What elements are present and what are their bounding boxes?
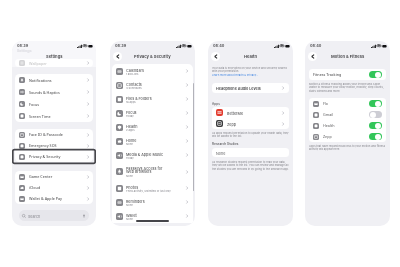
staticText: Files & Folders [126,96,152,100]
staticText: Flo [323,101,329,106]
staticText: 2 apps [126,128,135,131]
button[interactable]: iCloud [15,182,93,193]
button[interactable]: Wallet [112,209,193,223]
button[interactable]: Calendars [112,64,193,78]
staticText: iCloud [29,185,41,190]
staticText: Privacy & Security [134,54,171,59]
button[interactable]: Zepp [309,131,386,142]
staticText: Gmail [323,112,334,117]
button[interactable]: On [369,100,382,107]
staticText: BetterMe [227,111,244,115]
staticText: Wallpaper [29,61,47,66]
staticText: Settings [17,49,32,53]
staticText: Passkeys Access for Web Browsers [126,166,163,174]
staticText: Game Center [29,174,53,179]
staticText: Screen Time [29,114,51,119]
button[interactable]: On [369,122,382,129]
staticText: Settings [46,54,63,59]
button[interactable]: Home [112,134,193,148]
button[interactable]: Game Center [15,171,93,182]
button[interactable]: BetterMe [212,107,289,118]
button[interactable]: Focus [112,106,193,120]
staticText: Fitness Tracking [313,72,342,77]
staticText: Zepp [227,122,237,126]
button[interactable]: Passkeys Access for Web Browsers [112,162,193,181]
button[interactable]: Learn more about Health & Privacy... [212,73,259,76]
staticText: Third-activity, unlimited or just only [126,189,171,192]
staticText: Wallet [126,213,137,217]
staticText: As apps request permission to update you… [212,131,289,138]
staticText: 4 Schedules [126,86,142,89]
button[interactable]: Zepp [212,118,289,129]
staticText: Wallet & Apple Pay [29,196,63,201]
staticText: Motion & Fitness [331,54,365,59]
staticText: None [126,217,133,220]
staticText: Face ID & Passcode [29,132,63,137]
staticText: Emergency SOS [29,143,57,148]
staticText: Media & Apple Music [126,152,164,156]
staticText: None [126,203,133,206]
staticText: Apps that have requested access to your … [309,144,386,151]
staticText: Your data is encrypted on your device an… [212,66,289,73]
staticText: Zepp [323,134,332,139]
staticText: Home [126,138,137,142]
staticText: Calendars [126,68,144,72]
staticText: Health [126,124,138,128]
staticText: Sounds & Haptics [29,90,60,95]
staticText: Notifications [29,78,52,83]
staticText: Focus [126,110,137,114]
staticText: 1 add-ons [126,72,139,75]
button[interactable]: Search [19,210,89,221]
staticText: Health [244,54,258,59]
button[interactable]: Reminders [112,195,193,209]
button[interactable]: Wallet & Apple Pay [15,193,93,204]
button[interactable]: Headphone Audio Levels [212,83,289,93]
staticText: Health [323,123,335,128]
button[interactable]: Photos [112,181,193,195]
staticText: 08:39 [115,43,127,48]
button[interactable]: Back [308,52,317,61]
staticText: None [126,174,133,177]
staticText: Reminders [126,199,145,203]
staticText: Headphone Audio Levels [216,86,261,90]
button[interactable]: On [369,133,382,140]
button[interactable]: Privacy & Security [15,151,93,162]
staticText: As research studies request permission t… [212,160,289,171]
button[interactable]: Screen Time [15,110,93,122]
staticText: Apps [212,102,220,106]
staticText: Today [126,114,134,117]
staticText: Motion & Fitness Tracking allows your iP… [309,82,386,93]
button[interactable]: Back [211,52,220,61]
button[interactable]: Sounds & Haptics [15,86,93,98]
staticText: Photos [126,185,139,189]
button[interactable]: Emergency SOS [15,140,93,151]
button[interactable]: Notifications [15,74,93,86]
staticText: 08:39 [17,43,29,48]
staticText: 16 apps [126,100,136,103]
staticText: None [126,142,133,145]
staticText: None [216,151,226,155]
button[interactable]: Back [113,52,122,61]
staticText: Today [126,156,134,159]
button[interactable]: On [369,71,382,78]
button[interactable]: Media & Apple Music [112,148,193,162]
staticText: Contacts [126,82,142,86]
button[interactable]: Focus [15,98,93,110]
button[interactable]: Contacts [112,78,193,92]
button[interactable]: Off [369,111,382,118]
button[interactable]: Gmail [309,109,386,120]
staticText: Research Studies [212,142,239,146]
button[interactable]: Health [309,120,386,131]
button[interactable]: Face ID & Passcode [15,129,93,140]
staticText: Focus [29,102,40,107]
button[interactable]: Wallpaper [15,59,93,67]
button[interactable]: Health [112,120,193,134]
button[interactable]: Files & Folders [112,92,193,106]
button[interactable]: Flo [309,98,386,109]
button[interactable]: Fitness Tracking [309,69,386,80]
staticText: Search [28,214,41,218]
staticText: 08:40 [310,43,322,48]
staticText: Privacy & Security [29,154,61,159]
staticText: 08:40 [213,43,225,48]
